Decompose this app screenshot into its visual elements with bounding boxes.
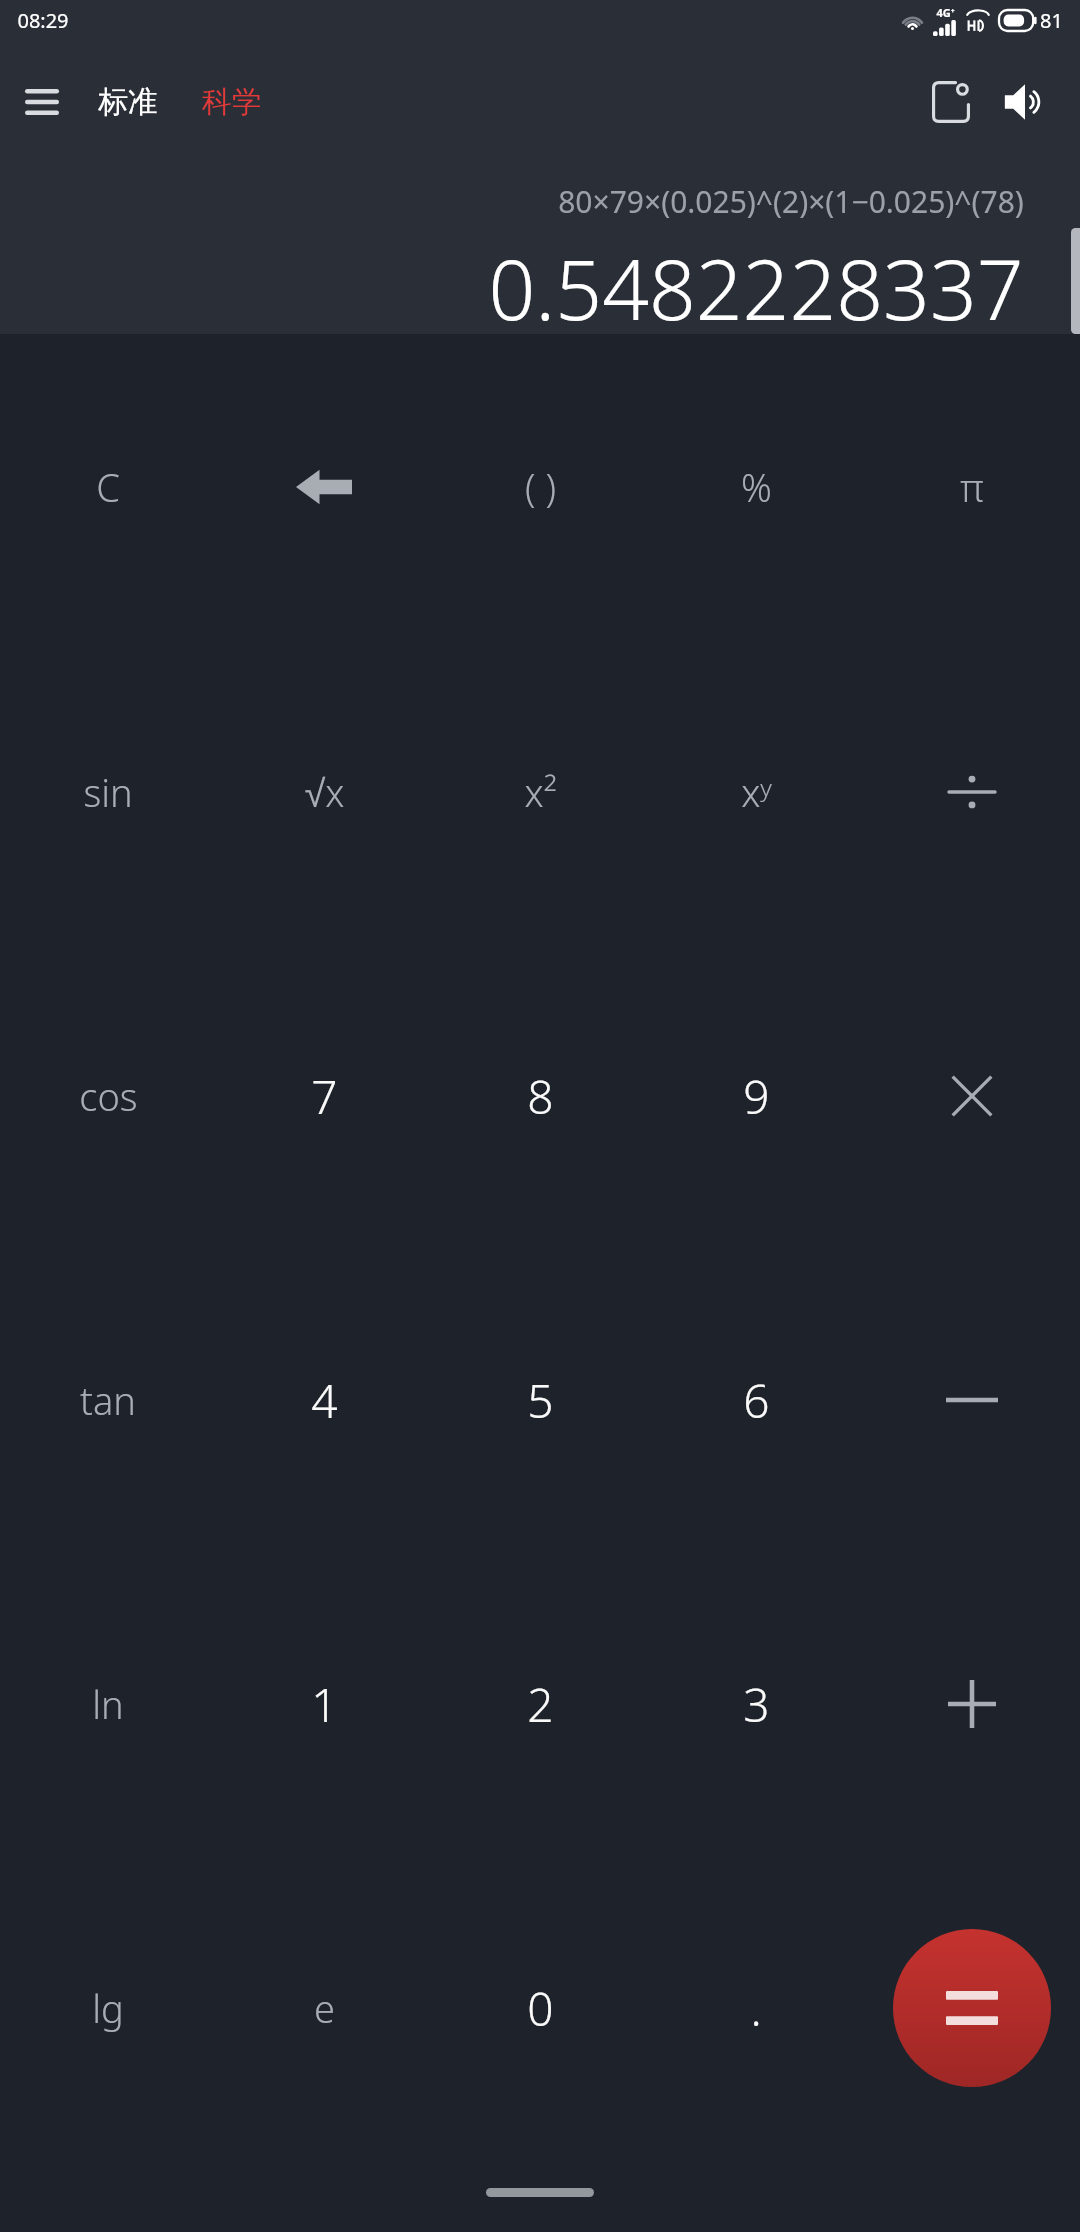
staticText: 3: [743, 1673, 770, 1736]
staticText: xʸ: [741, 766, 772, 818]
staticText: π: [960, 461, 984, 513]
button[interactable]: 8: [432, 944, 648, 1248]
staticText: √x: [304, 766, 345, 818]
staticText: 6: [743, 1369, 770, 1432]
button[interactable]: 4: [216, 1248, 432, 1552]
button[interactable]: ( ): [432, 334, 648, 639]
button[interactable]: ln: [0, 1552, 216, 1856]
button[interactable]: 0: [432, 1856, 648, 2160]
button[interactable]: Sound: [988, 65, 1062, 139]
button[interactable]: %: [648, 334, 864, 639]
button[interactable]: tan: [0, 1248, 216, 1552]
button[interactable]: 9: [648, 944, 864, 1248]
staticText: e: [314, 1982, 335, 2034]
staticText: .: [750, 1977, 762, 2040]
button[interactable]: lg: [0, 1856, 216, 2160]
staticText: 2: [527, 1673, 554, 1736]
staticText: 5: [527, 1369, 554, 1432]
staticText: tan: [80, 1374, 136, 1426]
button[interactable]: Plus: [864, 1552, 1080, 1856]
button[interactable]: 7: [216, 944, 432, 1248]
staticText: cos: [79, 1070, 138, 1122]
staticText: C: [96, 461, 120, 513]
staticText: 8: [527, 1065, 554, 1128]
button[interactable]: Menu: [8, 68, 76, 136]
button[interactable]: Minus: [864, 1248, 1080, 1552]
button[interactable]: C: [0, 334, 216, 639]
button[interactable]: 科学: [202, 83, 262, 121]
button[interactable]: xʸ: [648, 639, 864, 944]
staticText: 80×79×(0.025)^(2)×(1−0.025)^(78): [558, 181, 1024, 222]
button[interactable]: x²: [432, 639, 648, 944]
staticText: 0.5482228337: [488, 232, 1024, 334]
staticText: 0: [527, 1977, 554, 2040]
button[interactable]: Divide: [864, 639, 1080, 944]
button[interactable]: 标准: [98, 83, 158, 121]
button[interactable]: 3: [648, 1552, 864, 1856]
button[interactable]: Backspace: [216, 334, 432, 639]
button[interactable]: History: [914, 65, 988, 139]
staticText: 08:29: [17, 7, 69, 34]
staticText: 标准: [98, 83, 158, 121]
staticText: 4G⁺: [936, 5, 955, 20]
staticText: 7: [311, 1065, 338, 1128]
button[interactable]: Multiply: [864, 944, 1080, 1248]
staticText: 81: [1040, 7, 1063, 34]
button[interactable]: sin: [0, 639, 216, 944]
staticText: ln: [92, 1678, 124, 1730]
staticText: 1: [311, 1673, 338, 1736]
button[interactable]: Equals: [864, 1856, 1080, 2160]
staticText: 4: [311, 1369, 338, 1432]
staticText: ( ): [525, 461, 556, 513]
staticText: 9: [743, 1065, 770, 1128]
button[interactable]: 6: [648, 1248, 864, 1552]
button[interactable]: π: [864, 334, 1080, 639]
button[interactable]: e: [216, 1856, 432, 2160]
button[interactable]: .: [648, 1856, 864, 2160]
button[interactable]: √x: [216, 639, 432, 944]
staticText: x²: [524, 766, 557, 818]
button[interactable]: 1: [216, 1552, 432, 1856]
staticText: %: [741, 461, 772, 513]
button[interactable]: cos: [0, 944, 216, 1248]
button[interactable]: 2: [432, 1552, 648, 1856]
staticText: 科学: [202, 83, 262, 121]
button[interactable]: 5: [432, 1248, 648, 1552]
staticText: lg: [92, 1982, 124, 2034]
staticText: sin: [83, 766, 133, 818]
